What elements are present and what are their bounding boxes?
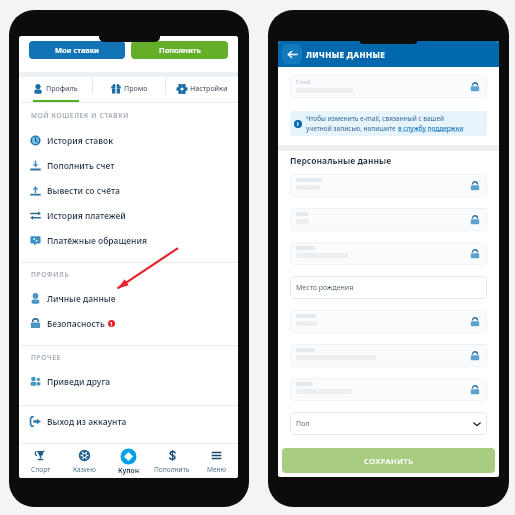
button[interactable]: Пополнить счет: [19, 153, 238, 178]
staticText: Пол: [296, 419, 310, 429]
button[interactable]: Мои ставки: [29, 41, 125, 59]
staticText: Настройки: [190, 84, 228, 94]
staticText: 1: [110, 321, 113, 327]
button[interactable]: E-mail: [290, 75, 487, 98]
staticText: учетной записью, напишите: [306, 124, 398, 133]
button[interactable]: Купон: [106, 444, 150, 478]
staticText: Выход из аккаунта: [47, 416, 127, 427]
staticText: СОХРАНИТЬ: [364, 456, 414, 466]
button[interactable]: Платёжные обращения: [19, 228, 238, 253]
staticText: Купон: [118, 466, 139, 475]
staticText: Меню: [207, 465, 226, 474]
button[interactable]: [290, 242, 487, 265]
staticText: Чтобы изменить e-mail, связанный с вашей: [306, 114, 445, 123]
staticText: Место рождения: [296, 283, 354, 293]
button[interactable]: История платежей: [19, 203, 238, 228]
button[interactable]: Пополнить: [131, 41, 228, 59]
button[interactable]: Меню: [194, 444, 238, 478]
button[interactable]: История ставок: [19, 128, 238, 153]
staticText: Пополнить счет: [47, 160, 115, 171]
button[interactable]: [290, 208, 487, 231]
staticText: Спорт: [31, 465, 51, 474]
staticText: Казино: [73, 465, 96, 474]
staticText: ПРОФИЛЬ: [31, 270, 70, 279]
staticText: Личные данные: [47, 293, 116, 304]
staticText: История ставок: [47, 135, 114, 146]
staticText: в службу поддержки: [398, 124, 464, 133]
button[interactable]: Промо: [93, 77, 165, 102]
button[interactable]: СОХРАНИТЬ: [282, 448, 495, 473]
staticText: ЛИЧНЫЕ ДАННЫЕ: [306, 49, 386, 60]
button[interactable]: Казино: [62, 444, 106, 478]
staticText: Промо: [124, 84, 148, 94]
staticText: Персональные данные: [290, 155, 392, 167]
staticText: E-mail: [296, 79, 311, 86]
button[interactable]: Пол: [290, 412, 487, 435]
staticText: Платёжные обращения: [47, 235, 147, 246]
button[interactable]: Back: [282, 44, 302, 64]
button[interactable]: Личные данные: [19, 286, 238, 311]
staticText: Пополнить: [159, 45, 201, 55]
button[interactable]: Приведи друга: [19, 369, 238, 394]
button[interactable]: [290, 344, 487, 367]
button[interactable]: Безопасность: [19, 311, 238, 336]
staticText: История платежей: [47, 210, 126, 221]
staticText: Безопасность: [47, 318, 105, 329]
staticText: МОЙ КОШЕЛЕК И СТАВКИ: [31, 111, 130, 120]
button[interactable]: Выход из аккаунта: [19, 409, 238, 434]
staticText: Приведи друга: [47, 376, 111, 387]
button[interactable]: Вывести со счёта: [19, 178, 238, 203]
button[interactable]: [290, 310, 487, 333]
button[interactable]: Спорт: [19, 444, 62, 478]
button[interactable]: Место рождения: [290, 276, 487, 299]
staticText: Пополнить: [154, 465, 190, 474]
button[interactable]: Пополнить: [150, 444, 194, 478]
button[interactable]: [290, 378, 487, 401]
staticText: Профиль: [46, 84, 78, 94]
staticText: ПРОЧЕЕ: [31, 353, 62, 362]
button[interactable]: [290, 174, 487, 197]
button[interactable]: Профиль: [19, 77, 92, 102]
staticText: Вывести со счёта: [47, 185, 120, 196]
button[interactable]: Настройки: [166, 77, 238, 102]
staticText: Мои ставки: [55, 45, 99, 55]
staticText: i: [297, 121, 299, 128]
